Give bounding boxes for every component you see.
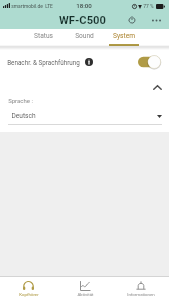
button[interactable]: Informationen [113,277,169,300]
staticText: 18:00 [76,2,92,9]
staticText: 77 % [143,3,154,9]
staticText: Sound [75,32,94,40]
staticText: Kopfhörer [19,292,39,297]
button[interactable]: Status [23,29,64,47]
staticText: Status [34,32,53,40]
button[interactable]: Power [124,12,140,28]
staticText: Sprache : [8,97,33,104]
staticText: Aktivität [77,292,94,297]
button[interactable]: Sprache : [0,97,169,125]
button[interactable]: Benachr. & Sprachführung [0,46,169,78]
staticText: System [113,32,135,40]
button[interactable]: Notifications and voice guidance [138,55,162,69]
staticText: Informationen [127,292,155,297]
staticText: LTE [45,3,53,9]
button[interactable]: System [104,29,144,47]
button[interactable]: Kopfhörer [0,277,57,300]
staticText: Deutsch [11,112,36,120]
button[interactable]: Aktivität [57,277,113,300]
button[interactable]: More options [148,12,164,28]
staticText: WF-C500 [59,14,106,27]
staticText: smartmobil.de [11,3,43,9]
staticText: Benachr. & Sprachführung [7,59,80,66]
button[interactable]: Collapse section [149,79,165,95]
button[interactable]: Sound [64,29,104,47]
